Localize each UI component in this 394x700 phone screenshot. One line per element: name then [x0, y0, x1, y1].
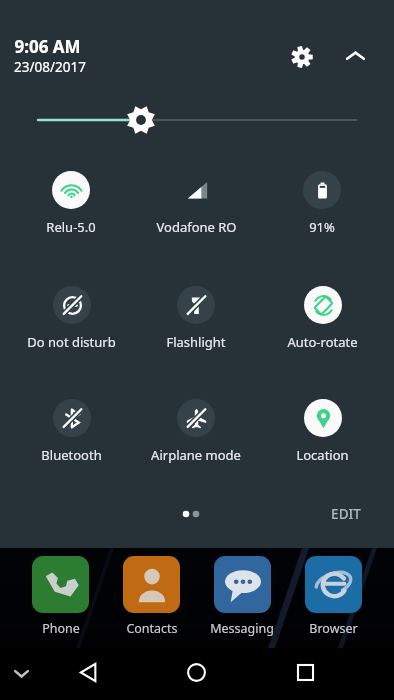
button[interactable]: Location — [264, 399, 380, 479]
staticText: Vodafone RO — [156, 218, 237, 236]
button[interactable]: Hide — [6, 658, 36, 688]
button[interactable]: Recent apps — [287, 654, 324, 691]
button[interactable]: Do not disturb — [13, 286, 129, 366]
staticText: Phone — [42, 620, 80, 637]
button[interactable]: Airplane mode — [138, 399, 254, 479]
button[interactable]: EDIT — [316, 500, 376, 528]
staticText: Contacts — [126, 620, 178, 637]
button[interactable]: Relu-5.0 — [13, 171, 129, 251]
staticText: Relu-5.0 — [46, 218, 96, 236]
staticText: EDIT — [331, 505, 361, 523]
staticText: Auto-rotate — [287, 333, 358, 351]
button[interactable]: Phone — [16, 556, 104, 644]
button[interactable]: Back — [70, 654, 107, 691]
button[interactable]: Flashlight — [138, 286, 254, 366]
staticText: Messaging — [210, 620, 274, 637]
staticText: Flashlight — [166, 333, 226, 351]
button[interactable]: Vodafone RO — [138, 171, 254, 251]
button[interactable]: Bluetooth — [13, 399, 129, 479]
button[interactable]: 91% — [264, 171, 380, 251]
staticText: Airplane mode — [151, 446, 241, 464]
button[interactable]: Auto-rotate — [264, 286, 380, 366]
button[interactable] — [0, 103, 394, 137]
staticText: Bluetooth — [41, 446, 102, 464]
button[interactable]: Collapse — [340, 41, 370, 71]
staticText: 91% — [309, 218, 335, 236]
staticText: 9:06 AM — [14, 35, 81, 58]
staticText: Browser — [309, 620, 358, 637]
staticText: Location — [296, 446, 349, 464]
staticText: Do not disturb — [27, 333, 116, 351]
button[interactable]: Messaging — [198, 556, 286, 644]
button[interactable]: Browser — [289, 556, 377, 644]
button[interactable]: Settings — [287, 42, 317, 72]
button[interactable]: Contacts — [107, 556, 195, 644]
button[interactable]: Home — [178, 654, 215, 691]
staticText: 23/08/2017 — [14, 58, 86, 76]
